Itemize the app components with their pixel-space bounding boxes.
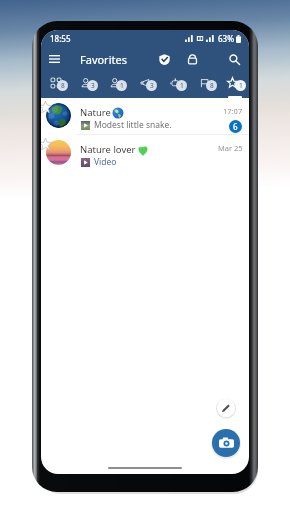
- button[interactable]: Channels: [130, 71, 160, 98]
- staticText: Favorites: [80, 52, 127, 67]
- button[interactable]: Private: [71, 71, 101, 98]
- staticText: 8: [61, 81, 65, 90]
- staticText: 1: [239, 81, 243, 90]
- button[interactable]: Open navigation menu: [41, 47, 67, 71]
- staticText: 63%: [218, 33, 234, 44]
- staticText: Modest little snake.: [94, 119, 172, 131]
- button[interactable]: All chats: [41, 71, 71, 98]
- button[interactable]: Favorites: [219, 71, 249, 98]
- staticText: 3: [150, 81, 154, 90]
- button[interactable]: Unread: [190, 71, 220, 98]
- button[interactable]: Search: [222, 47, 246, 71]
- staticText: 1: [180, 81, 184, 90]
- button[interactable]: Nature: [41, 98, 249, 135]
- staticText: 8: [210, 81, 214, 90]
- staticText: Nature: [80, 106, 111, 119]
- staticText: Nature lover: [80, 143, 136, 156]
- staticText: 6: [233, 121, 238, 132]
- button[interactable]: Bots: [160, 71, 190, 98]
- staticText: 17:07: [223, 106, 243, 116]
- button[interactable]: New message: [216, 398, 236, 418]
- staticText: Video: [94, 156, 117, 168]
- button[interactable]: Verified: [152, 47, 176, 71]
- button[interactable]: Camera: [211, 428, 241, 458]
- staticText: 18:55: [50, 33, 71, 44]
- staticText: 3: [91, 81, 95, 90]
- button[interactable]: Nature lover: [41, 135, 249, 172]
- staticText: Mar 25: [218, 143, 243, 153]
- button[interactable]: Secret chats: [180, 47, 204, 71]
- button[interactable]: Groups: [100, 71, 130, 98]
- staticText: 1: [120, 81, 124, 90]
